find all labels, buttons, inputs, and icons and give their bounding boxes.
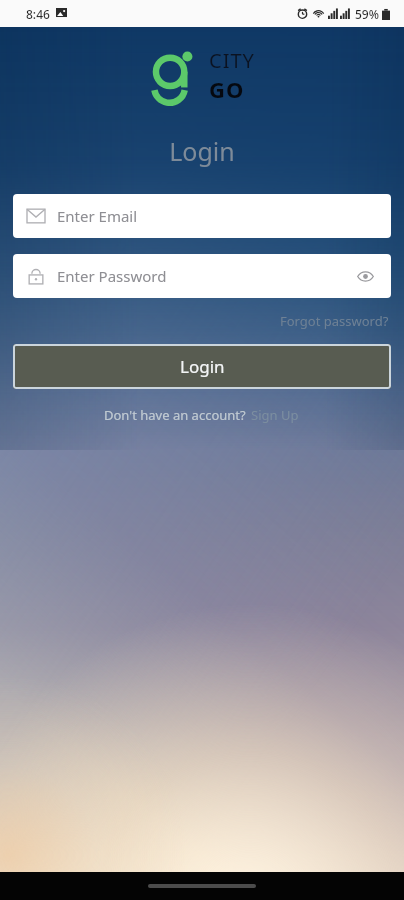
staticText: 59%	[355, 6, 379, 22]
staticText: Login	[0, 134, 404, 168]
staticText: Enter Password	[57, 266, 167, 286]
staticText: Sign Up	[251, 406, 299, 424]
staticText: Forgot password?	[280, 312, 389, 330]
button[interactable]: Forgot password?	[278, 308, 391, 334]
staticText: 8:46	[26, 6, 50, 22]
staticText: GO	[209, 74, 245, 104]
button[interactable]: Sign Up	[250, 403, 300, 427]
staticText: Login	[180, 355, 225, 378]
button[interactable]: Show password	[354, 265, 377, 288]
button[interactable]: Home	[148, 884, 256, 888]
button[interactable]: Email field	[13, 194, 391, 238]
staticText: CITY	[209, 47, 255, 74]
button[interactable]: Login	[13, 344, 391, 389]
staticText: Enter Email	[57, 206, 138, 226]
staticText: Don't have an account?	[104, 406, 250, 424]
button[interactable]: Password field	[13, 254, 391, 298]
